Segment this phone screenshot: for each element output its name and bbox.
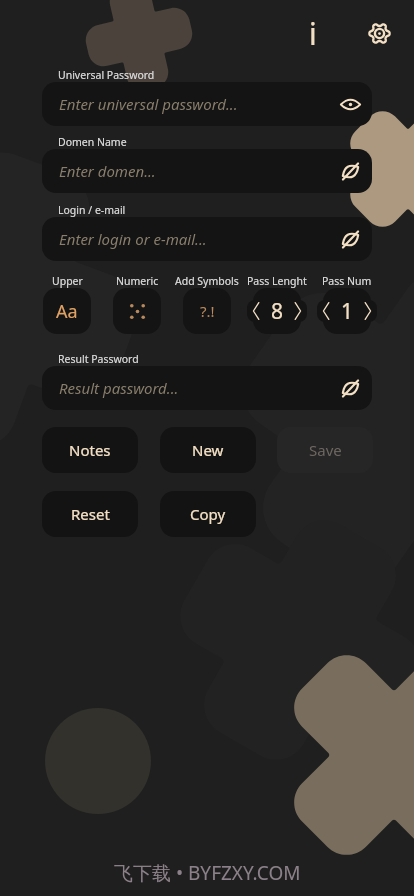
- button[interactable]: Decrease: [247, 288, 265, 334]
- staticText: Aa: [56, 299, 78, 324]
- button[interactable]: Copy: [160, 491, 256, 537]
- staticText: i: [309, 13, 317, 54]
- staticText: 8: [271, 297, 284, 326]
- staticText: Add Symbols: [175, 274, 239, 288]
- staticText: Pass Lenght: [247, 274, 307, 288]
- staticText: Notes: [69, 440, 111, 460]
- button[interactable]: Save: [277, 427, 373, 473]
- button[interactable]: Settings: [357, 11, 401, 55]
- staticText: Copy: [190, 504, 226, 524]
- staticText: Enter login or e-mail...: [59, 229, 207, 249]
- staticText: Result Password: [58, 352, 139, 366]
- button[interactable]: Result password...: [42, 366, 372, 410]
- button[interactable]: Show password: [333, 154, 367, 188]
- staticText: Domen Name: [58, 135, 127, 149]
- staticText: ?.!: [200, 301, 215, 321]
- staticText: 1: [341, 297, 354, 326]
- button[interactable]: Enter universal password...: [42, 82, 372, 126]
- button[interactable]: Notes: [42, 427, 138, 473]
- staticText: 飞下载 • BYFZXY.COM: [114, 860, 301, 886]
- staticText: Universal Password: [58, 68, 155, 82]
- staticText: Pass Num: [322, 274, 372, 288]
- staticText: Reset: [71, 504, 110, 524]
- button[interactable]: Increase: [289, 288, 307, 334]
- staticText: Save: [309, 440, 342, 460]
- staticText: Numeric: [116, 274, 159, 288]
- button[interactable]: Increase: [359, 288, 377, 334]
- button[interactable]: [113, 288, 161, 334]
- button[interactable]: New: [160, 427, 256, 473]
- staticText: New: [192, 440, 224, 460]
- button[interactable]: Reset: [42, 491, 138, 537]
- staticText: Upper: [52, 274, 83, 288]
- button[interactable]: Info: [291, 11, 335, 55]
- button[interactable]: Aa: [43, 288, 91, 334]
- staticText: Enter universal password...: [59, 94, 238, 114]
- button[interactable]: Show password: [333, 371, 367, 405]
- staticText: Result password...: [59, 378, 179, 398]
- button[interactable]: ?.!: [183, 288, 231, 334]
- staticText: Enter domen...: [59, 161, 156, 181]
- button[interactable]: Decrease: [317, 288, 335, 334]
- button[interactable]: Enter login or e-mail...: [42, 217, 372, 261]
- button[interactable]: Hide password: [333, 87, 367, 121]
- staticText: Login / e-mail: [58, 203, 126, 217]
- button[interactable]: Enter domen...: [42, 149, 372, 193]
- button[interactable]: Show password: [333, 222, 367, 256]
